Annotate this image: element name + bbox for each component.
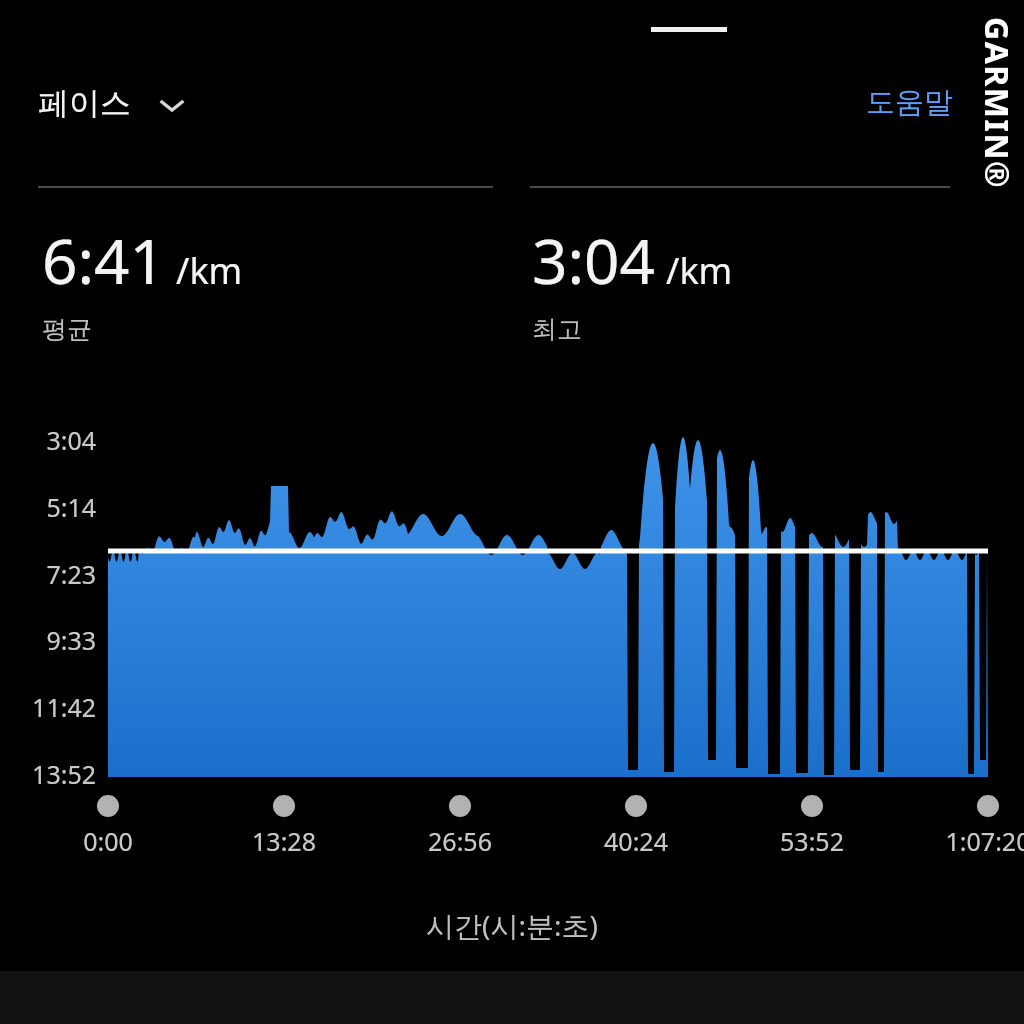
button[interactable]: 6:41 (38, 214, 247, 349)
staticText: 13:52 (0, 757, 96, 791)
button[interactable]: 도움말 (862, 80, 957, 125)
staticText: 시간(시:분:초) (0, 906, 1024, 944)
staticText: 13:28 (194, 824, 374, 858)
staticText: 1:07:20 (898, 824, 1024, 858)
staticText: 53:52 (722, 824, 902, 858)
staticText: 최고 (532, 314, 582, 345)
staticText: 5:14 (0, 490, 96, 524)
staticText: 6:41 (42, 218, 166, 302)
staticText: /km (666, 246, 733, 295)
staticText: 도움말 (866, 84, 953, 121)
staticText: GARMIN® (975, 17, 1019, 190)
staticText: 11:42 (0, 690, 96, 724)
button[interactable]: 3:04 (528, 214, 737, 349)
staticText: /km (176, 246, 243, 295)
button[interactable]: 페이스 (32, 78, 193, 129)
staticText: 평균 (42, 314, 92, 345)
staticText: 0:00 (18, 824, 198, 858)
staticText: 페이스 (38, 84, 131, 123)
staticText: 26:56 (370, 824, 550, 858)
staticText: 3:04 (0, 423, 96, 457)
staticText: 3:04 (532, 218, 656, 302)
staticText: 9:33 (0, 623, 96, 657)
staticText: 40:24 (546, 824, 726, 858)
other: Garmin (971, 17, 1019, 207)
staticText: 7:23 (0, 557, 96, 591)
